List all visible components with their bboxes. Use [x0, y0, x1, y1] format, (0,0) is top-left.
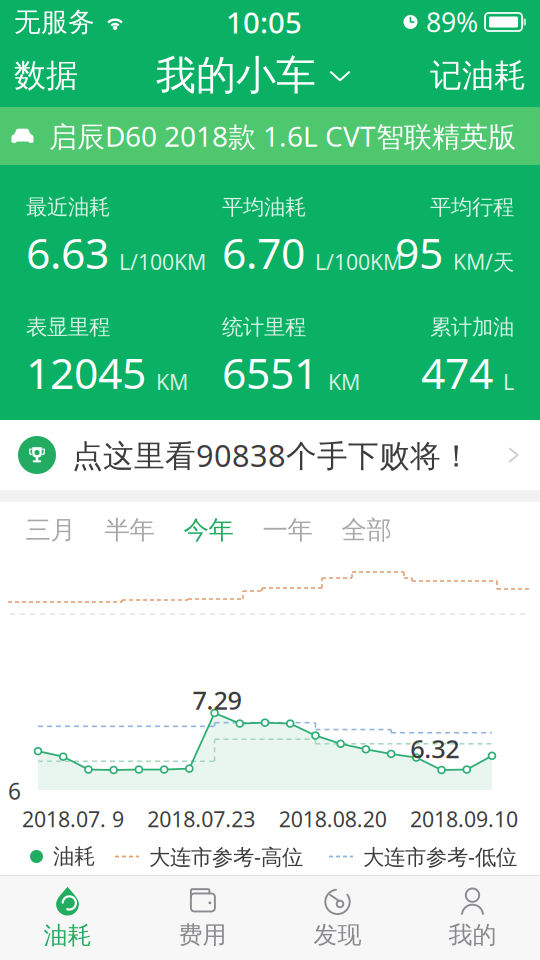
button[interactable]: 半年: [90, 502, 169, 558]
button[interactable]: 三月: [11, 502, 90, 558]
staticText: 累计加油: [430, 314, 514, 340]
staticText: 全部: [341, 514, 391, 545]
staticText: 点这里看90838个手下败将！: [72, 435, 472, 475]
button[interactable]: 今年: [169, 502, 248, 558]
button[interactable]: 数据: [0, 44, 92, 107]
staticText: 今年: [183, 514, 233, 545]
staticText: 89%: [426, 4, 478, 40]
staticText: 2018.09.10: [410, 805, 518, 833]
staticText: 大连市参考-低位: [363, 842, 517, 871]
button[interactable]: 费用: [135, 876, 270, 960]
staticText: 发现: [313, 920, 361, 950]
staticText: 费用: [178, 920, 226, 950]
staticText: 统计里程: [222, 314, 306, 340]
button[interactable]: 记油耗: [416, 44, 540, 107]
button[interactable]: 我的小车: [146, 44, 362, 107]
staticText: 10:05: [226, 2, 302, 41]
button[interactable]: 一年: [248, 502, 327, 558]
staticText: 数据: [14, 56, 78, 95]
staticText: 无服务: [14, 6, 95, 38]
button[interactable]: 启辰D60 2018款 1.6L CVT智联精英版: [0, 107, 540, 165]
staticText: L/100KM: [119, 247, 206, 276]
staticText: 6551: [222, 344, 318, 401]
staticText: 6.70: [222, 224, 305, 281]
staticText: 大连市参考-高位: [149, 842, 303, 871]
button[interactable]: 全部: [327, 502, 406, 558]
staticText: 12045: [26, 344, 146, 401]
staticText: 2018.07. 9: [22, 805, 124, 833]
staticText: 474: [421, 344, 493, 401]
button[interactable]: 发现: [270, 876, 405, 960]
staticText: KM: [156, 367, 188, 396]
staticText: 记油耗: [430, 56, 526, 95]
button[interactable]: 油耗: [0, 876, 135, 960]
staticText: 6.32: [410, 732, 459, 765]
staticText: 半年: [104, 514, 154, 545]
staticText: 启辰D60 2018款 1.6L CVT智联精英版: [49, 117, 516, 155]
staticText: 我的: [448, 920, 496, 950]
staticText: KM: [328, 367, 360, 396]
staticText: 7.29: [193, 683, 242, 717]
staticText: KM/天: [453, 247, 514, 276]
staticText: 6.63: [26, 224, 109, 281]
staticText: 平均行程: [430, 194, 514, 220]
staticText: 油耗: [53, 843, 95, 870]
button[interactable]: 点这里看90838个手下败将！: [0, 420, 540, 490]
staticText: 最近油耗: [26, 194, 110, 220]
staticText: 6: [8, 776, 21, 806]
staticText: 表显里程: [26, 314, 110, 340]
staticText: 2018.07.23: [147, 805, 255, 833]
staticText: 平均油耗: [222, 194, 306, 220]
staticText: L/100KM: [315, 247, 402, 276]
staticText: L: [503, 367, 514, 396]
staticText: 2018.08.20: [279, 805, 387, 833]
staticText: 三月: [25, 514, 75, 545]
staticText: 我的小车: [156, 51, 316, 100]
button[interactable]: 我的: [405, 876, 540, 960]
staticText: 油耗: [43, 921, 91, 950]
staticText: 一年: [262, 514, 312, 545]
staticText: 95: [395, 224, 443, 281]
